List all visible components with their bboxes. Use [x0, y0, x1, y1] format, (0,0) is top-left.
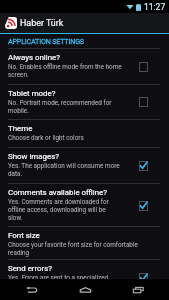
- button[interactable]: Theme: [0, 120, 169, 148]
- staticText: Haber Türk: [20, 18, 64, 28]
- staticText: No. Enables offline mode from the home s…: [8, 63, 122, 79]
- button[interactable]: Show images?: [0, 148, 169, 184]
- button[interactable]: Always online?: [0, 49, 169, 85]
- button[interactable]: Home: [63, 279, 107, 300]
- staticText: Choose dark or light colors: [8, 134, 84, 141]
- staticText: Tablet mode?: [8, 89, 56, 98]
- staticText: Send errors?: [8, 264, 53, 273]
- staticText: Font size: [8, 231, 40, 240]
- staticText: Yes. Errors are sent to a specialized se…: [8, 274, 109, 290]
- staticText: Comments available offline?: [8, 188, 107, 197]
- staticText: APPLICATION SETTINGS: [8, 37, 84, 45]
- button[interactable]: Comments available offline?: [0, 184, 169, 227]
- button[interactable]: Recent apps: [116, 279, 160, 300]
- staticText: Theme: [8, 124, 33, 133]
- staticText: Yes. Comments are downloaded for offline…: [8, 198, 109, 222]
- staticText: Show images?: [8, 152, 59, 161]
- button[interactable]: Send errors?: [0, 260, 169, 296]
- staticText: 11:27: [144, 2, 166, 12]
- button[interactable]: Tablet mode?: [0, 85, 169, 120]
- button[interactable]: Back: [9, 279, 53, 300]
- staticText: Choose your favorite font size for comfo…: [8, 241, 138, 257]
- staticText: No. Portrait mode, recommended for mobil…: [8, 99, 112, 115]
- staticText: Yes. The application will consume more d…: [8, 162, 120, 178]
- staticText: Always online?: [8, 53, 60, 62]
- button[interactable]: Font size: [0, 227, 169, 260]
